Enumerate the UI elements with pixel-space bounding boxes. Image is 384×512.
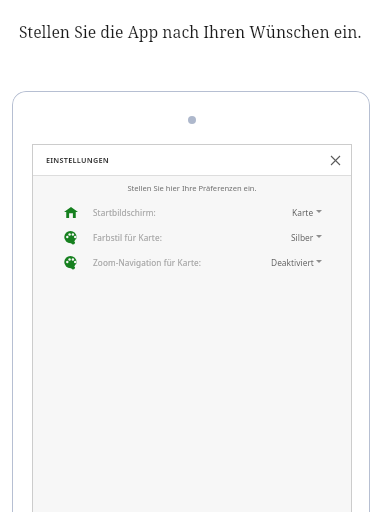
button[interactable]: Startbildschirm: [32, 200, 352, 225]
staticText: Startbildschirm: [93, 207, 156, 218]
staticText: EINSTELLUNGEN [46, 155, 109, 165]
staticText: Stellen Sie die App nach Ihren Wünschen … [19, 21, 362, 43]
button[interactable]: Farbstil für Karte: [32, 225, 352, 250]
staticText: Stellen Sie hier Ihre Präferenzen ein. [32, 183, 352, 193]
staticText: Farbstil für Karte: [93, 232, 162, 243]
button[interactable]: Karte [292, 200, 322, 225]
staticText: Karte [292, 207, 314, 218]
staticText: Silber [291, 232, 314, 243]
staticText: Deaktiviert [271, 257, 314, 268]
staticText: Zoom-Navigation für Karte: [93, 257, 202, 268]
button[interactable]: Schließen [321, 146, 349, 174]
button[interactable]: Zoom-Navigation für Karte: [32, 250, 352, 275]
button[interactable]: Deaktiviert [271, 250, 322, 275]
button[interactable]: Silber [291, 225, 322, 250]
